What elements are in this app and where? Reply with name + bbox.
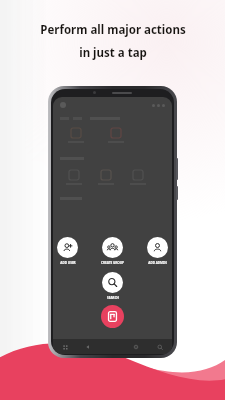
staticText: Perform all major actions (40, 22, 186, 38)
staticText: ADD USER (60, 261, 76, 265)
staticText: ADD ADMIN (148, 261, 167, 265)
button[interactable]: CREATE GROUP (101, 237, 124, 265)
button[interactable]: ADD USER (57, 237, 78, 265)
button[interactable]: Notifications (148, 339, 172, 354)
staticText: in just a tap (79, 45, 147, 61)
button[interactable]: SEARCH (102, 272, 123, 300)
button[interactable]: Close actions menu (101, 305, 124, 328)
button[interactable]: Apps (53, 339, 76, 354)
button[interactable]: Back (76, 339, 100, 354)
staticText: CREATE GROUP (101, 261, 124, 265)
staticText: SEARCH (107, 296, 119, 300)
button[interactable]: ADD ADMIN (147, 237, 168, 265)
button[interactable]: Settings (124, 339, 148, 354)
